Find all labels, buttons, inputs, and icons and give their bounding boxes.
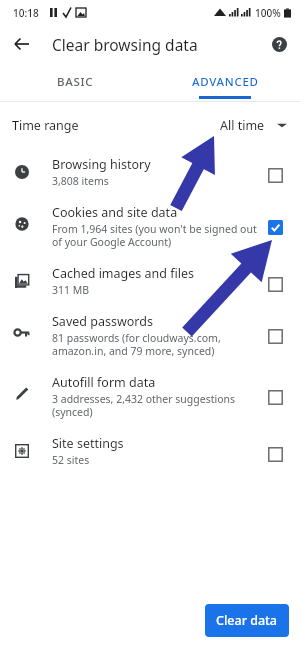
button[interactable]: Time range (0, 102, 300, 148)
staticText: BASIC (57, 74, 94, 90)
staticText: 3 addresses, 2,432 other suggestions (sy… (52, 392, 236, 419)
button[interactable]: Saved passwords (262, 323, 288, 349)
staticText: 3,808 items (52, 174, 109, 188)
button[interactable]: ADVANCED (150, 62, 300, 101)
button[interactable]: Cached images and files (0, 257, 300, 305)
button[interactable]: BASIC (0, 62, 150, 101)
button[interactable]: Cached images and files (262, 271, 288, 297)
button[interactable]: Site settings (262, 441, 288, 467)
staticText: 52 sites (52, 453, 90, 467)
staticText: Time range (12, 117, 79, 134)
staticText: Autofill form data (52, 374, 156, 391)
staticText: Cached images and files (52, 265, 194, 282)
staticText: 81 passwords (for cloudways.com, amazon.… (52, 331, 221, 358)
button[interactable]: Browsing history (262, 162, 288, 188)
button[interactable]: Cookies and site data (262, 214, 288, 240)
button[interactable]: Help (265, 30, 293, 58)
staticText: Clear data (216, 612, 278, 629)
button[interactable]: Site settings (0, 427, 300, 475)
button[interactable]: Autofill form data (0, 366, 300, 427)
button[interactable]: Saved passwords (0, 305, 300, 366)
staticText: Clear browsing data (52, 34, 198, 55)
button[interactable]: Cookies and site data (0, 196, 300, 257)
staticText: 100% (255, 6, 281, 20)
button[interactable]: Autofill form data (262, 384, 288, 410)
staticText: 10:18 (13, 6, 39, 20)
staticText: 311 MB (52, 283, 90, 297)
staticText: Browsing history (52, 156, 151, 173)
staticText: Site settings (52, 435, 124, 452)
button[interactable]: Browsing history (0, 148, 300, 196)
staticText: ADVANCED (192, 74, 259, 90)
button[interactable]: Clear data (205, 604, 289, 637)
staticText: Saved passwords (52, 313, 153, 330)
staticText: All time (220, 117, 265, 134)
staticText: Cookies and site data (52, 204, 178, 221)
button[interactable]: Back (7, 29, 37, 59)
staticText: From 1,964 sites (you won't be signed ou… (52, 222, 257, 249)
